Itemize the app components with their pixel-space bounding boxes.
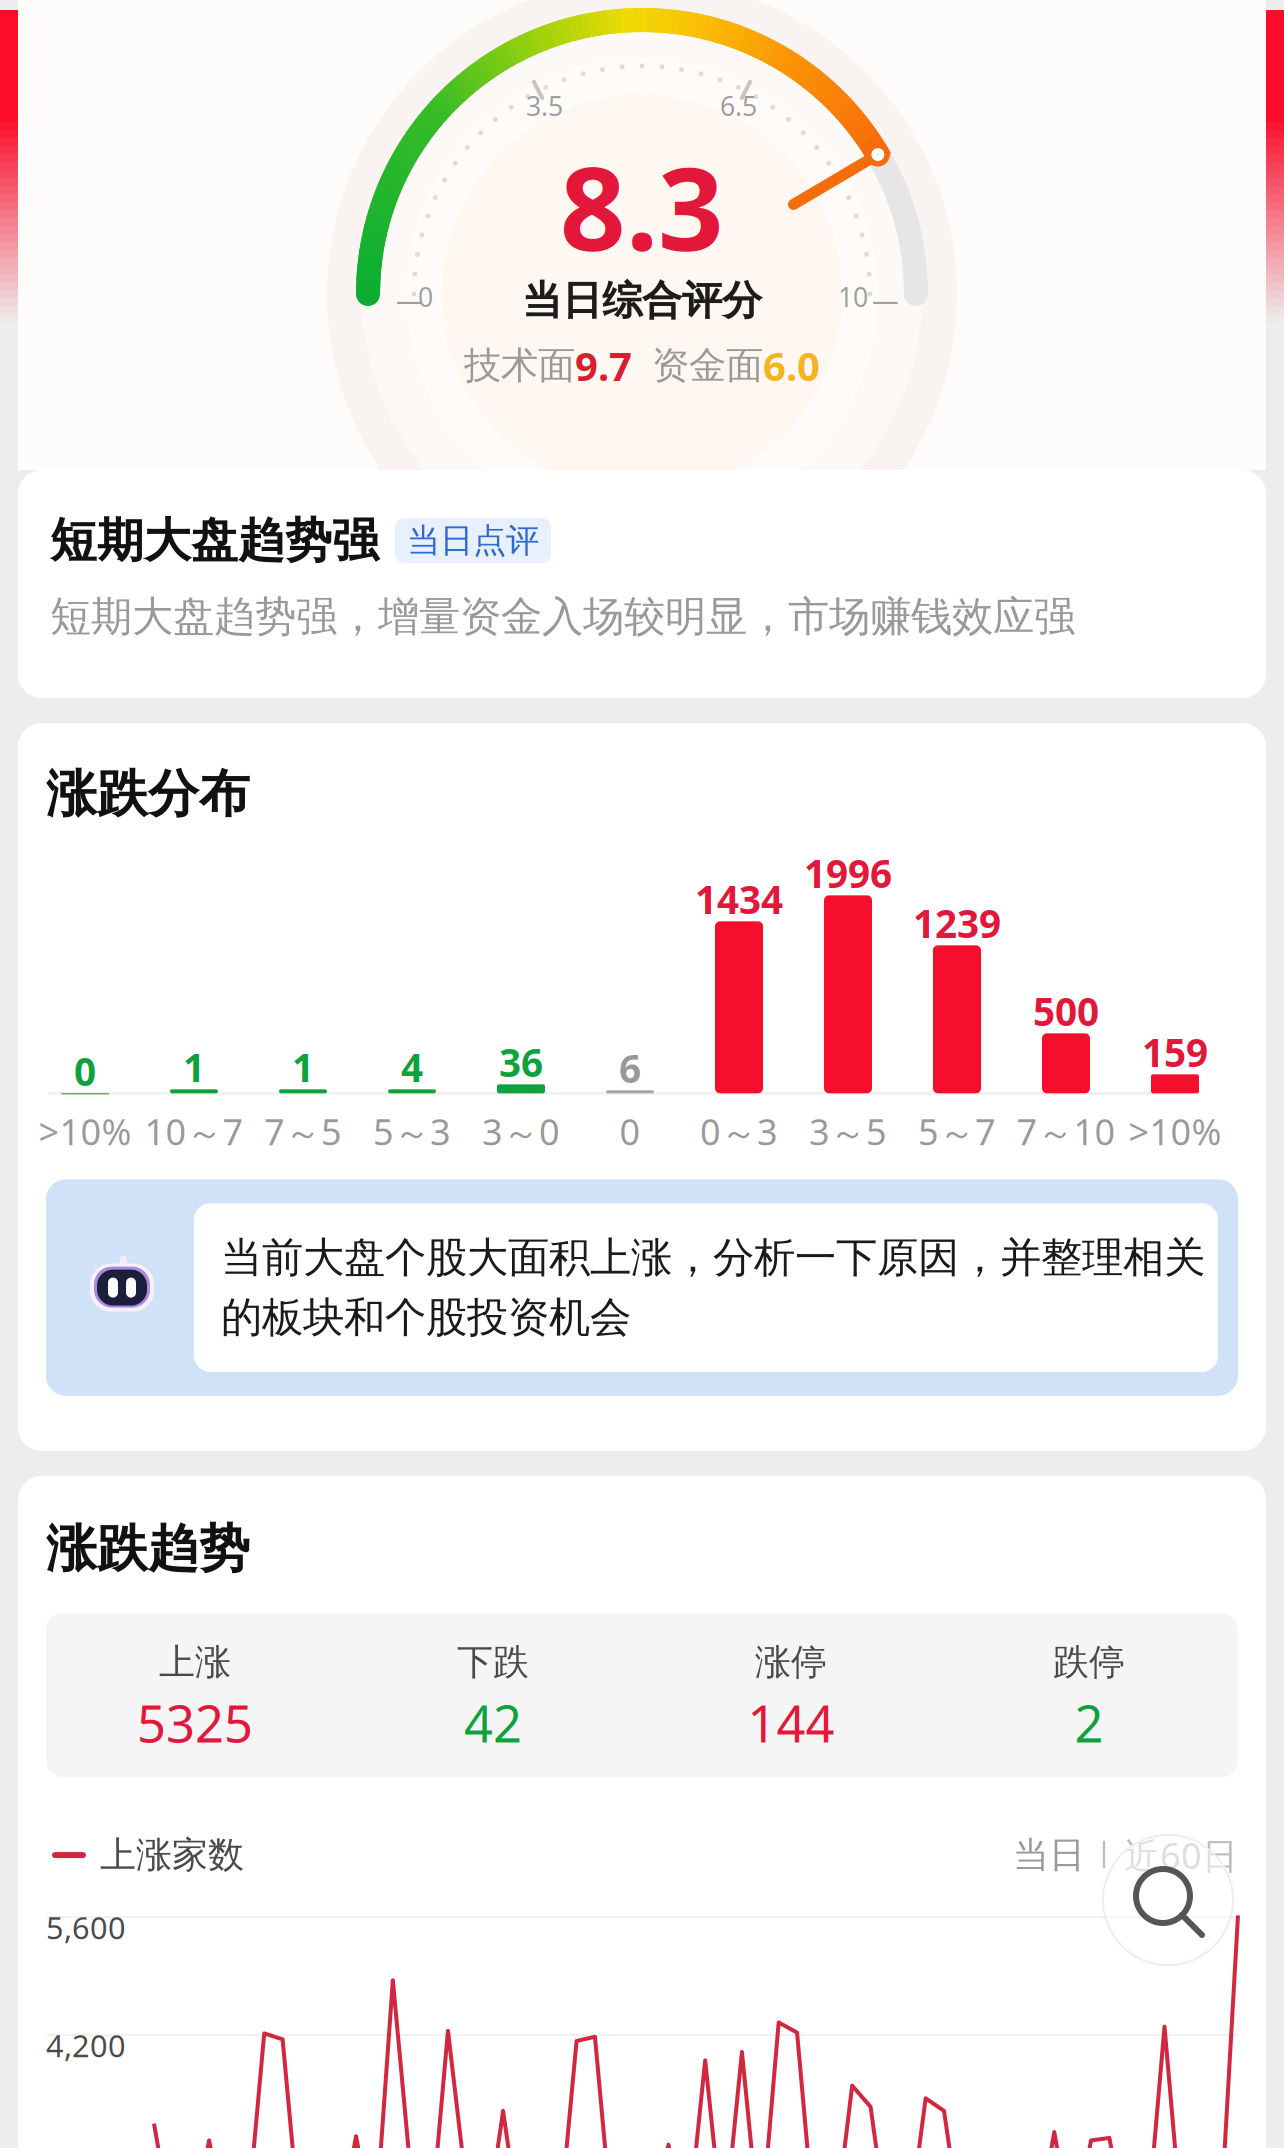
staticText: 5～3 <box>373 1107 451 1155</box>
staticText: 0～3 <box>700 1107 778 1155</box>
staticText: 1 <box>292 1041 314 1093</box>
staticText: 涨跌分布 <box>46 763 250 825</box>
staticText: 42 <box>464 1689 522 1757</box>
staticText: 7～5 <box>264 1107 342 1155</box>
staticText: 短期大盘趋势强 <box>50 512 379 569</box>
staticText: 9.7 <box>575 339 632 392</box>
staticText: 上涨 <box>159 1640 231 1684</box>
staticText: 跌停 <box>1053 1640 1125 1684</box>
staticText: >10% <box>38 1107 131 1155</box>
staticText: 1 <box>183 1041 205 1093</box>
staticText: 144 <box>747 1689 834 1757</box>
staticText: 当前大盘个股大面积上涨，分析一下原因，并整理相关 <box>221 1232 1205 1283</box>
staticText: 1434 <box>695 873 783 925</box>
staticText: 资金面 <box>652 343 763 388</box>
staticText: 1996 <box>804 847 892 899</box>
staticText: 5325 <box>137 1689 253 1757</box>
staticText: 159 <box>1142 1026 1208 1078</box>
staticText: 0 <box>619 1107 640 1155</box>
button[interactable]: 搜索 <box>1103 1835 1233 1965</box>
staticText: 的板块和个股投资机会 <box>221 1292 631 1343</box>
staticText: 上涨家数 <box>100 1833 244 1877</box>
staticText: >10% <box>1128 1107 1221 1155</box>
staticText: 3～5 <box>809 1107 887 1155</box>
staticText: 技术面 <box>464 343 575 388</box>
staticText: — <box>872 282 899 317</box>
staticText: 当日点评 <box>407 520 539 561</box>
staticText: 当日综合评分 <box>522 276 762 325</box>
staticText: 36 <box>499 1036 543 1088</box>
staticText: 6.5 <box>720 88 757 123</box>
staticText: 涨停 <box>755 1640 827 1684</box>
staticText: 3～0 <box>482 1107 560 1155</box>
staticText: 500 <box>1033 985 1099 1037</box>
staticText: 丨 <box>1090 1837 1119 1873</box>
staticText: 下跌 <box>457 1640 529 1684</box>
button[interactable]: 近60日 <box>1124 1831 1238 1879</box>
staticText: 近60日 <box>1124 1831 1238 1879</box>
staticText: 10～7 <box>144 1107 243 1155</box>
staticText: 6.0 <box>763 339 820 392</box>
staticText: 8.3 <box>560 130 724 282</box>
staticText: 0 <box>418 279 433 314</box>
staticText: 短期大盘趋势强，增量资金入场较明显，市场赚钱效应强 <box>50 591 1075 642</box>
staticText: 0 <box>74 1045 96 1097</box>
button[interactable]: 当日 <box>1013 1833 1085 1877</box>
staticText: 当日 <box>1013 1833 1085 1877</box>
staticText: 5～7 <box>918 1107 996 1155</box>
staticText: 10 <box>838 279 868 314</box>
staticText: 5,600 <box>46 1907 126 1948</box>
staticText: 4,200 <box>46 2025 126 2066</box>
staticText: — <box>396 282 423 317</box>
staticText: 2 <box>1074 1689 1103 1757</box>
button[interactable]: 当前大盘个股大面积上涨，分析一下原因，并整理相关 <box>46 1179 1238 1396</box>
staticText: 7～10 <box>1016 1107 1115 1155</box>
staticText: 6 <box>619 1042 641 1094</box>
staticText: 3.5 <box>526 88 563 123</box>
staticText: 1239 <box>913 897 1001 949</box>
staticText: 涨跌趋势 <box>46 1518 250 1580</box>
staticText: 4 <box>401 1041 423 1093</box>
